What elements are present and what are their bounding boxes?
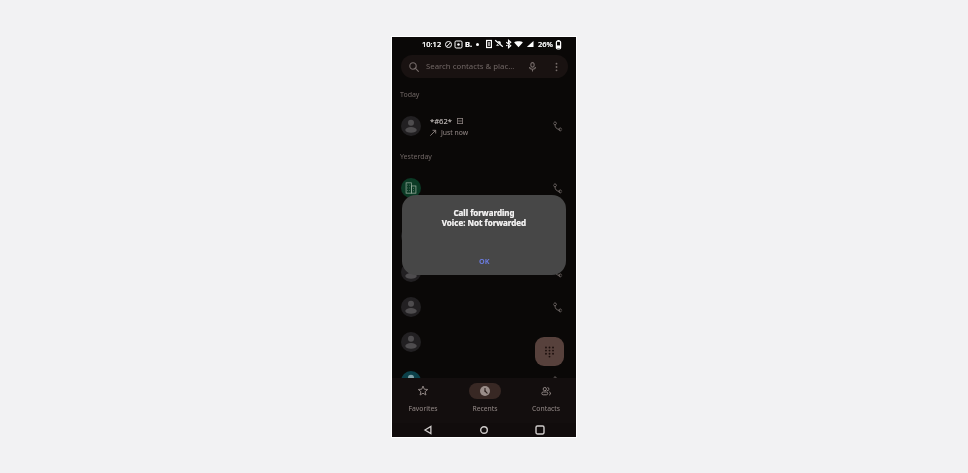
other: Call back (552, 183, 563, 194)
staticText: Favorites (408, 404, 438, 413)
staticText: 26% (538, 39, 553, 49)
button[interactable]: Call back (392, 254, 576, 290)
button[interactable]: Home (474, 423, 494, 437)
button[interactable]: Voice search (525, 55, 539, 78)
other: Call back (552, 121, 563, 132)
staticText: Call forwarding Voice: Not forwarded (402, 207, 566, 228)
button[interactable]: Favorites (392, 378, 454, 423)
other: Call back (552, 267, 563, 278)
button[interactable]: Back (418, 423, 438, 437)
button[interactable]: More options (549, 55, 563, 78)
other: Call back (552, 337, 563, 348)
other: Call back (552, 376, 563, 387)
staticText: *#62* (430, 116, 452, 126)
staticText: Search contacts & plac... (426, 61, 515, 72)
staticText: Yesterday (400, 152, 432, 162)
button[interactable]: Recents (454, 378, 515, 423)
button[interactable]: Call back (392, 170, 576, 206)
button[interactable]: OK (469, 253, 500, 269)
staticText: 10:12 (422, 39, 442, 49)
button[interactable]: Recent apps (530, 423, 550, 437)
staticText: Today (400, 90, 420, 100)
staticText: OK (479, 256, 490, 266)
button[interactable]: Call back (392, 218, 576, 254)
other: Call back (552, 302, 563, 313)
button[interactable]: *#62* (392, 108, 576, 144)
button[interactable]: Call back (392, 324, 576, 360)
button[interactable]: Search contacts & plac... (401, 55, 568, 78)
staticText: Just now (441, 128, 469, 137)
staticText: Contacts (532, 404, 560, 413)
staticText: B. (465, 39, 473, 49)
button[interactable]: Call back (392, 363, 576, 399)
button[interactable]: Open dialpad (535, 337, 564, 366)
button[interactable]: Call back (392, 289, 576, 325)
staticText: Recents (472, 404, 498, 413)
button[interactable]: Contacts (515, 378, 576, 423)
